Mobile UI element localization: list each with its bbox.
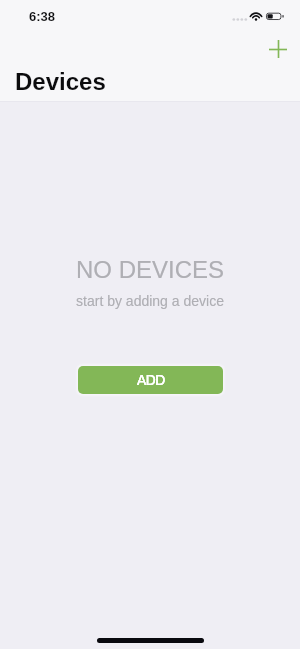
- staticText: 6:38: [29, 9, 56, 24]
- staticText: ADD: [137, 373, 165, 388]
- staticText: start by adding a device: [0, 293, 300, 309]
- staticText: NO DEVICES: [0, 256, 300, 283]
- button[interactable]: Add device: [260, 31, 296, 67]
- staticText: Devices: [15, 68, 106, 95]
- staticText: ADD: [137, 373, 165, 388]
- button[interactable]: ADD: [78, 366, 223, 394]
